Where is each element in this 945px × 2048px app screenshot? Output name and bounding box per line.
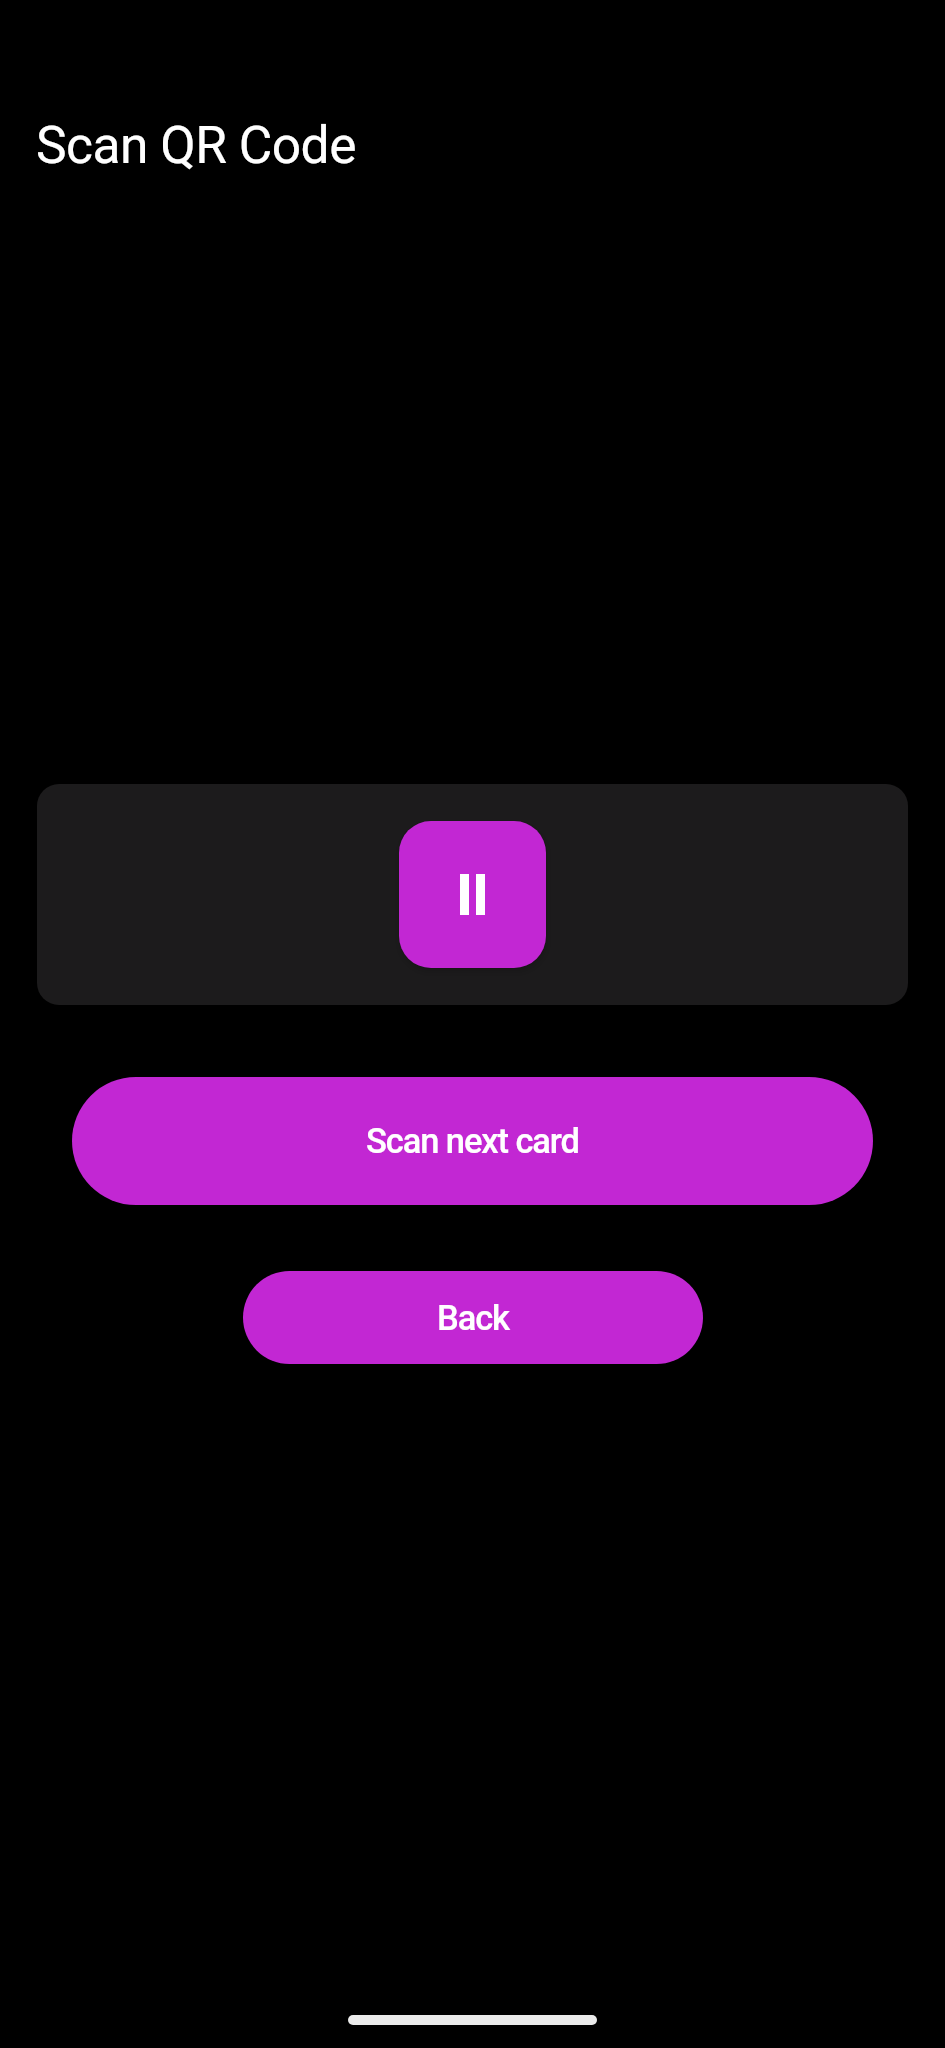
staticText: Scan next card [366,1121,579,1161]
staticText: Back [437,1298,509,1338]
staticText: Scan QR Code [36,115,356,175]
button[interactable]: Back [243,1271,703,1364]
button[interactable]: Scan next card [72,1077,873,1205]
button[interactable]: Pause scanning [399,821,546,968]
